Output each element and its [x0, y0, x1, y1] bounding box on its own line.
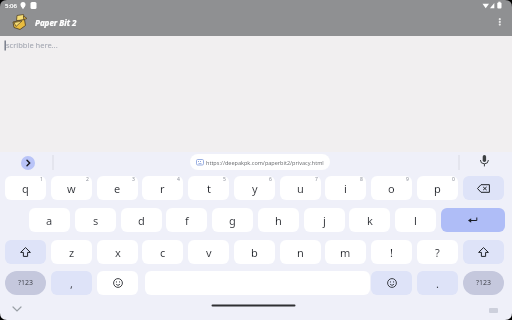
staticText: u: [297, 181, 304, 196]
button[interactable]: m: [325, 240, 366, 264]
button[interactable]: f: [166, 208, 207, 232]
staticText: z: [69, 245, 75, 260]
button[interactable]: y: [234, 176, 275, 200]
button[interactable]: q: [5, 176, 46, 200]
staticText: k: [367, 213, 373, 228]
button[interactable]: s: [75, 208, 116, 232]
staticText: ?123: [476, 278, 492, 288]
button[interactable]: [21, 156, 35, 170]
staticText: s: [93, 213, 99, 228]
button[interactable]: k: [349, 208, 390, 232]
button[interactable]: !: [371, 240, 412, 264]
button[interactable]: r: [142, 176, 183, 200]
staticText: !: [390, 245, 393, 260]
staticText: q: [22, 181, 29, 196]
button[interactable]: h: [258, 208, 299, 232]
staticText: 7: [315, 176, 318, 183]
button[interactable]: c: [142, 240, 183, 264]
staticText: f: [185, 213, 189, 228]
button[interactable]: [463, 240, 504, 264]
staticText: b: [251, 245, 258, 260]
staticText: 0: [452, 176, 455, 183]
button[interactable]: ?123: [5, 271, 46, 295]
staticText: i: [344, 181, 347, 196]
staticText: https://deepakpk.com/paperbit2/privacy.h…: [206, 159, 324, 166]
button[interactable]: [463, 176, 504, 200]
staticText: 9: [406, 176, 409, 183]
staticText: h: [275, 213, 282, 228]
button[interactable]: ,: [51, 271, 92, 295]
staticText: scribble here...: [6, 40, 58, 50]
staticText: .: [436, 276, 439, 291]
staticText: g: [229, 213, 236, 228]
staticText: Paper Bit 2: [35, 17, 77, 28]
button[interactable]: a: [29, 208, 70, 232]
staticText: n: [297, 245, 304, 260]
button[interactable]: w: [51, 176, 92, 200]
staticText: 5: [223, 176, 226, 183]
button[interactable]: o: [371, 176, 412, 200]
staticText: m: [340, 245, 351, 260]
button[interactable]: u: [280, 176, 321, 200]
staticText: y: [252, 181, 258, 196]
button[interactable]: v: [188, 240, 229, 264]
button[interactable]: [474, 151, 496, 173]
staticText: 1: [40, 176, 43, 183]
button[interactable]: t: [188, 176, 229, 200]
button[interactable]: p: [417, 176, 458, 200]
button[interactable]: d: [121, 208, 162, 232]
staticText: w: [67, 181, 76, 196]
staticText: e: [114, 181, 121, 196]
button[interactable]: ?: [417, 240, 458, 264]
button[interactable]: l: [395, 208, 436, 232]
staticText: l: [414, 213, 417, 228]
staticText: 3: [132, 176, 135, 183]
staticText: a: [46, 213, 53, 228]
button[interactable]: [8, 300, 26, 316]
staticText: 8: [360, 176, 363, 183]
button[interactable]: z: [51, 240, 92, 264]
button[interactable]: [492, 14, 508, 34]
button[interactable]: [5, 240, 46, 264]
staticText: 6: [269, 176, 272, 183]
button[interactable]: n: [280, 240, 321, 264]
staticText: 2: [86, 176, 89, 183]
button[interactable]: .: [417, 271, 458, 295]
button[interactable]: [371, 271, 412, 295]
staticText: x: [115, 245, 121, 260]
staticText: 4: [177, 176, 180, 183]
button[interactable]: [97, 271, 138, 295]
staticText: j: [323, 213, 326, 228]
button[interactable]: g: [212, 208, 253, 232]
staticText: c: [160, 245, 166, 260]
button[interactable]: [485, 303, 502, 316]
button[interactable]: e: [97, 176, 138, 200]
button[interactable]: https://deepakpk.com/paperbit2/privacy.h…: [190, 154, 330, 170]
staticText: r: [160, 181, 165, 196]
staticText: t: [207, 181, 211, 196]
button[interactable]: ?123: [463, 271, 504, 295]
staticText: ?123: [18, 278, 34, 288]
button[interactable]: j: [304, 208, 345, 232]
staticText: d: [138, 213, 145, 228]
button[interactable]: b: [234, 240, 275, 264]
staticText: ,: [70, 276, 73, 291]
staticText: o: [388, 181, 395, 196]
staticText: 5:06: [5, 2, 17, 10]
staticText: ?: [435, 245, 440, 260]
staticText: v: [206, 245, 212, 260]
button[interactable]: x: [97, 240, 138, 264]
staticText: p: [434, 181, 441, 196]
button[interactable]: [441, 208, 505, 232]
button[interactable]: i: [325, 176, 366, 200]
